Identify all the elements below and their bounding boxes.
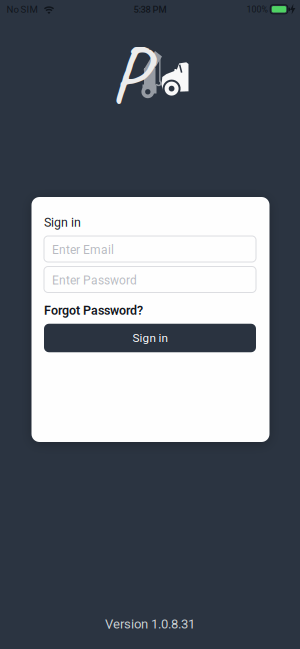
staticText: P	[110, 24, 147, 123]
staticText: Enter Email	[52, 243, 114, 257]
staticText: 5:38 PM	[133, 4, 166, 15]
staticText: Sign in	[44, 215, 81, 230]
staticText: No SIM	[6, 4, 37, 15]
staticText: Forgot Password?	[44, 303, 143, 318]
button[interactable]: Enter Email	[44, 236, 256, 262]
button[interactable]: Enter Password	[44, 266, 256, 292]
button[interactable]: Forgot Password?	[44, 303, 256, 318]
staticText: 100%	[246, 4, 267, 15]
button[interactable]: Sign in	[44, 324, 256, 352]
staticText: Version 1.0.8.31	[105, 616, 195, 632]
staticText: Enter Password	[52, 273, 137, 288]
staticText: Sign in	[132, 331, 167, 345]
